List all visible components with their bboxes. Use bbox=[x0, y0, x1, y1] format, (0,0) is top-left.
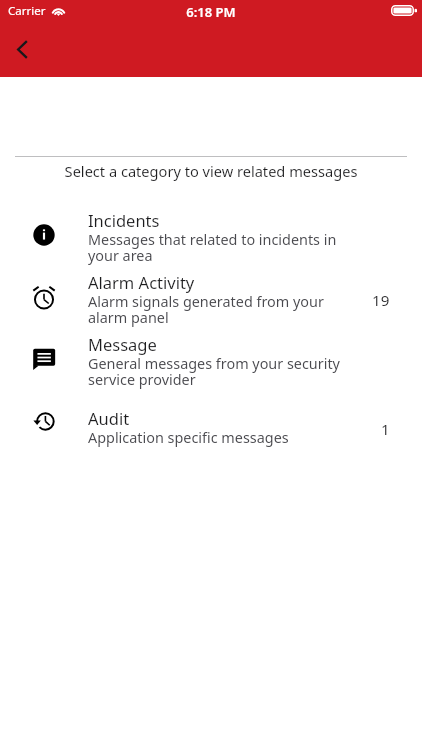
staticText: Messages that related to incidents in yo… bbox=[88, 230, 344, 265]
staticText: Carrier bbox=[8, 3, 46, 19]
staticText: Alarm Activity bbox=[88, 271, 195, 293]
staticText: Audit bbox=[88, 407, 130, 429]
button[interactable]: Message bbox=[0, 328, 422, 386]
staticText: Select a category to view related messag… bbox=[0, 161, 422, 181]
staticText: 6:18 PM bbox=[0, 3, 422, 21]
staticText: Application specific messages bbox=[88, 428, 344, 448]
button[interactable]: Back bbox=[0, 27, 44, 71]
staticText: 19 bbox=[372, 290, 390, 310]
staticText: General messages from your security serv… bbox=[88, 354, 344, 389]
staticText: Alarm signals generated from your alarm … bbox=[88, 292, 344, 327]
button[interactable]: Incidents bbox=[0, 204, 422, 262]
staticText: 1 bbox=[381, 419, 390, 439]
button[interactable]: Alarm Activity bbox=[0, 266, 422, 324]
staticText: Incidents bbox=[88, 209, 160, 231]
button[interactable]: Audit bbox=[0, 402, 422, 460]
staticText: Message bbox=[88, 333, 157, 355]
